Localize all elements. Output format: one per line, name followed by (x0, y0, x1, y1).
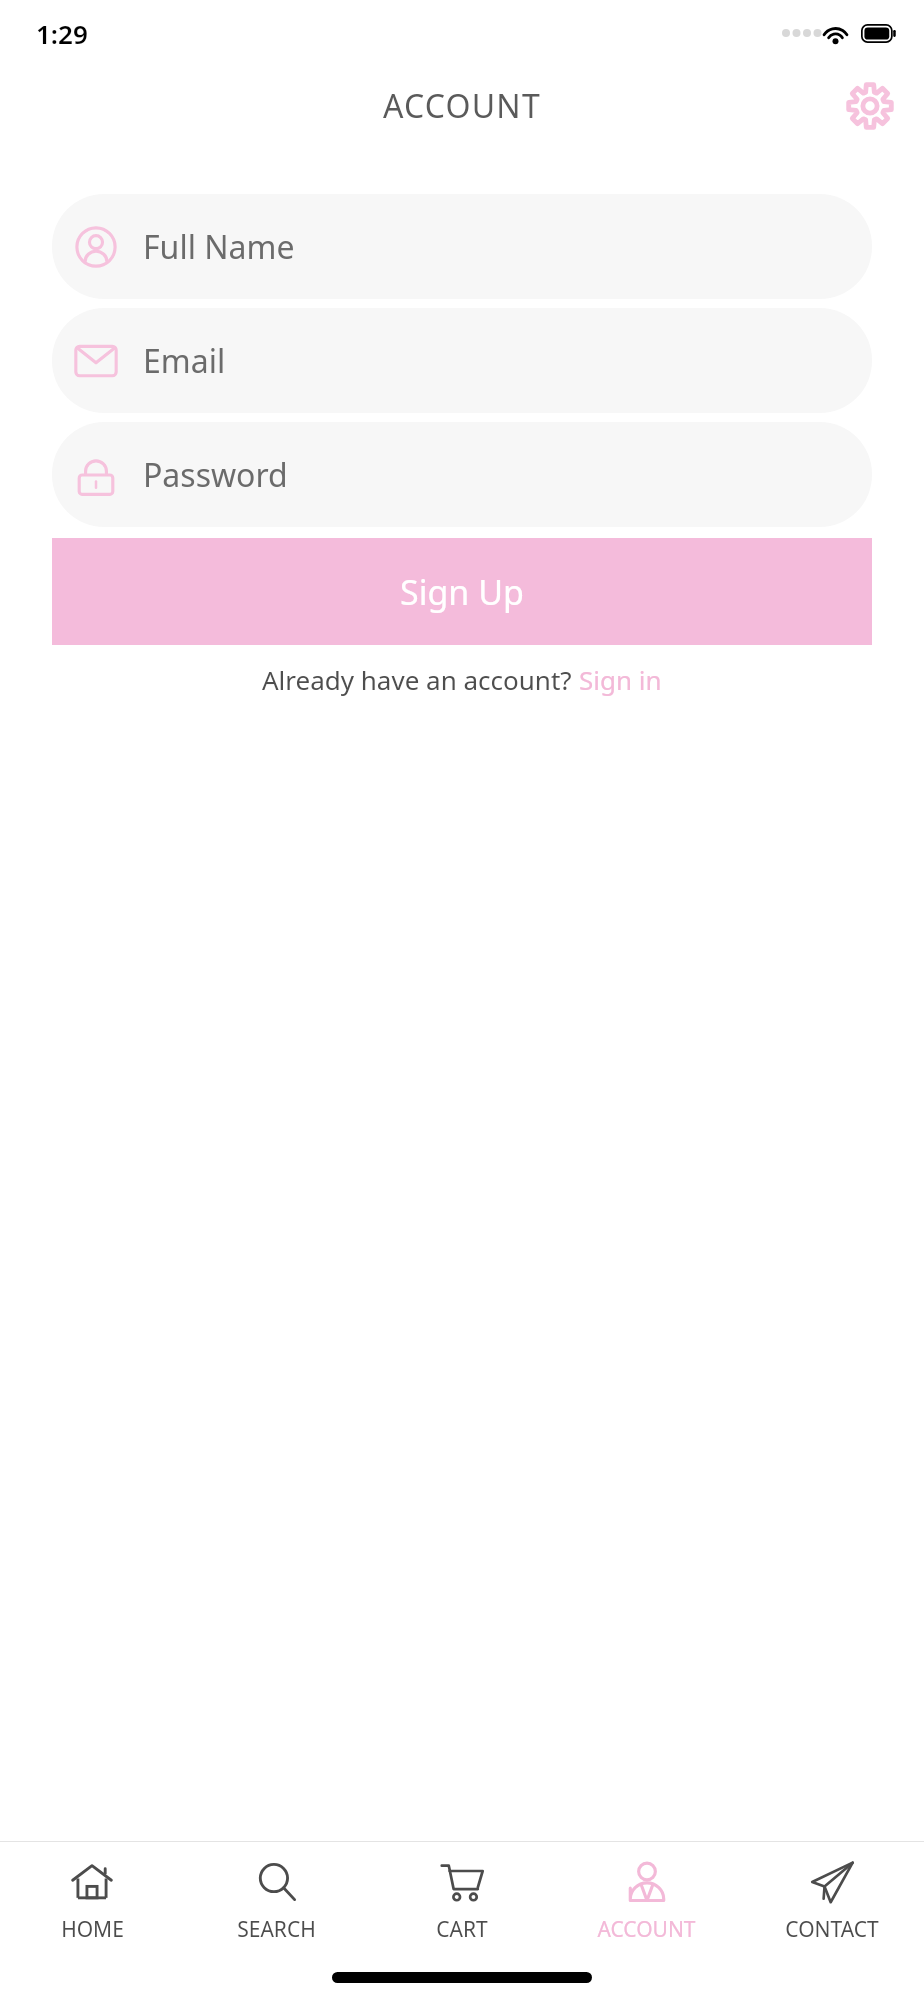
staticText: SEARCH (237, 1915, 316, 1944)
button[interactable]: Sign in (579, 662, 662, 697)
button[interactable]: CART (369, 1842, 554, 1962)
staticText: Already have an account? (262, 662, 579, 697)
button[interactable]: Email (52, 308, 872, 413)
button[interactable]: ACCOUNT (554, 1842, 739, 1962)
staticText: Password (143, 453, 288, 497)
staticText: ACCOUNT (597, 1915, 696, 1944)
staticText: ACCOUNT (383, 84, 541, 128)
staticText: Full Name (143, 225, 295, 269)
staticText: CART (436, 1915, 488, 1944)
staticText: 1:29 (36, 16, 88, 51)
button[interactable]: SEARCH (184, 1842, 369, 1962)
staticText: Sign Up (400, 569, 524, 615)
staticText: Email (143, 339, 226, 383)
staticText: HOME (61, 1915, 124, 1944)
button[interactable]: Full Name (52, 194, 872, 299)
staticText: Sign in (579, 662, 662, 697)
button[interactable]: HOME (0, 1842, 184, 1962)
button[interactable]: CONTACT (739, 1842, 924, 1962)
button[interactable]: Password (52, 422, 872, 527)
button[interactable]: Settings (832, 68, 908, 144)
button[interactable]: Sign Up (52, 538, 872, 645)
staticText: CONTACT (785, 1915, 879, 1944)
